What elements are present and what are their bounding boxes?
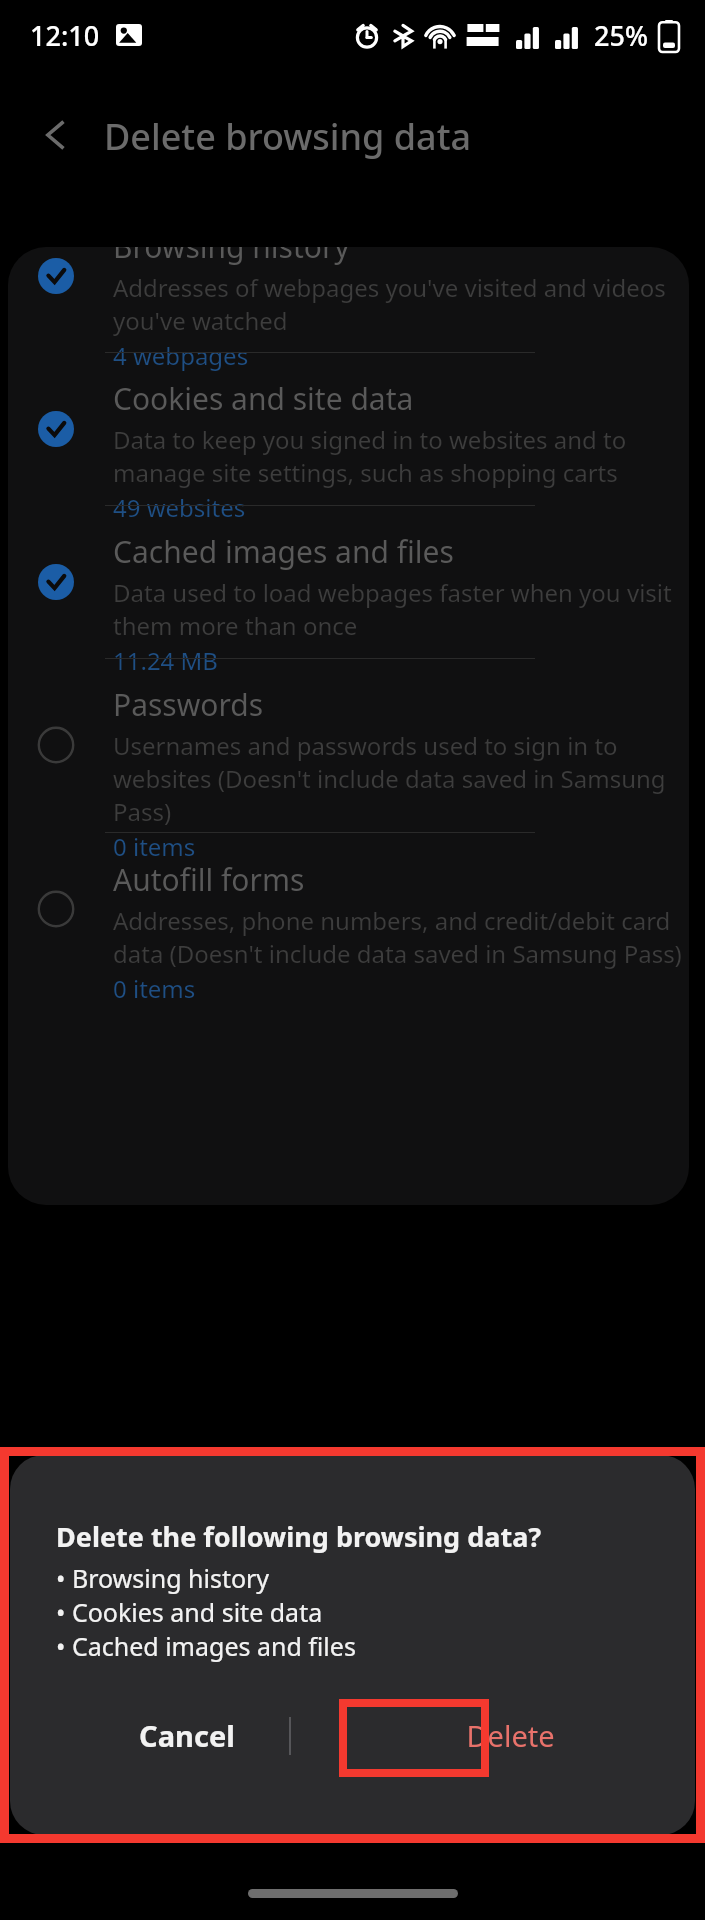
staticText: • Cached images and files bbox=[56, 1629, 356, 1663]
staticText: data (Doesn't include data saved in Sams… bbox=[113, 937, 682, 970]
staticText: Delete browsing data bbox=[104, 112, 472, 161]
staticText: 12:10 bbox=[30, 17, 100, 54]
staticText: • Cookies and site data bbox=[56, 1595, 323, 1629]
staticText: Addresses of webpages you've visited and… bbox=[113, 271, 666, 304]
staticText: websites (Doesn't include data saved in … bbox=[113, 762, 666, 795]
staticText: Addresses, phone numbers, and credit/deb… bbox=[113, 904, 671, 937]
staticText: 0 items bbox=[113, 830, 196, 863]
staticText: manage site settings, such as shopping c… bbox=[113, 456, 618, 489]
button[interactable] bbox=[8, 658, 689, 832]
staticText: 49 websites bbox=[113, 491, 246, 524]
staticText: Delete bbox=[466, 1716, 555, 1755]
staticText: them more than once bbox=[113, 609, 358, 642]
staticText: 25% bbox=[594, 17, 648, 54]
staticText: 4 webpages bbox=[113, 339, 249, 372]
staticText: Usernames and passwords used to sign in … bbox=[113, 729, 618, 762]
button[interactable]: Cancel bbox=[32, 1687, 342, 1783]
staticText: Browsing history bbox=[113, 247, 350, 267]
button[interactable] bbox=[8, 505, 689, 658]
button[interactable] bbox=[8, 247, 689, 352]
staticText: Cancel bbox=[139, 1716, 235, 1755]
button[interactable]: Delete bbox=[355, 1687, 665, 1783]
staticText: • Browsing history bbox=[56, 1561, 270, 1595]
staticText: Autofill forms bbox=[113, 859, 305, 900]
staticText: Data to keep you signed in to websites a… bbox=[113, 423, 627, 456]
staticText: Cookies and site data bbox=[113, 378, 414, 419]
staticText: Pass) bbox=[113, 795, 172, 828]
staticText: Delete the following browsing data? bbox=[56, 1518, 542, 1555]
staticText: you've watched bbox=[113, 304, 288, 337]
button[interactable]: Back bbox=[24, 103, 88, 167]
staticText: Data used to load webpages faster when y… bbox=[113, 576, 672, 609]
staticText: Cached images and files bbox=[113, 531, 454, 572]
button[interactable] bbox=[8, 352, 689, 505]
button[interactable] bbox=[8, 833, 689, 1205]
staticText: 0 items bbox=[113, 972, 196, 1005]
staticText: 11.24 MB bbox=[113, 644, 218, 677]
staticText: Passwords bbox=[113, 684, 264, 725]
